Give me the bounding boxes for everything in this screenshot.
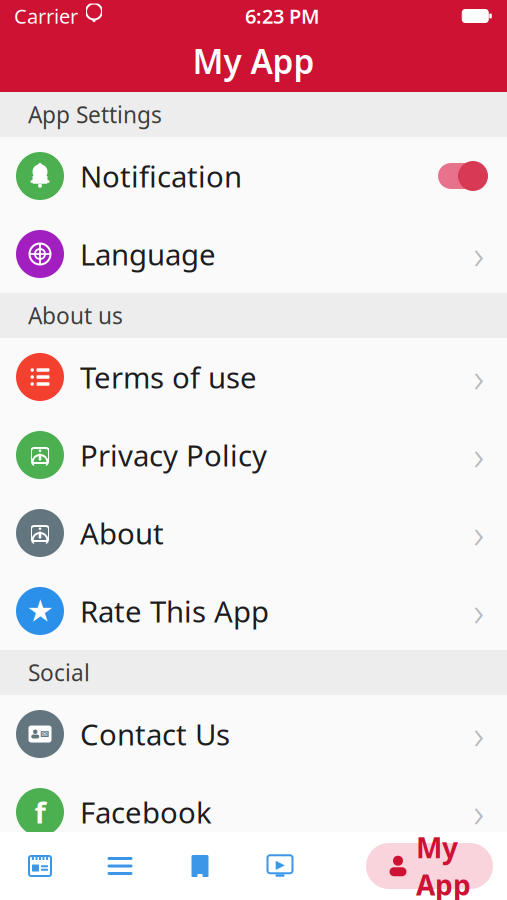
staticText: ▶ [275,857,284,871]
button[interactable]: Notification [0,137,507,215]
staticText: My App [416,829,471,900]
staticText: › [473,506,484,559]
staticText: Language [80,234,216,273]
button[interactable]: ★ [0,572,507,650]
staticText: About [80,513,164,552]
button[interactable]: f [0,773,507,851]
button[interactable]: Menu [80,836,160,896]
staticText: › [473,785,484,838]
staticText: App Settings [28,99,162,129]
staticText: Social [28,657,90,687]
staticText: Privacy Policy [80,435,267,474]
staticText: › [473,707,484,760]
staticText: Facebook [80,792,212,831]
button[interactable]: Terms of use [0,338,507,416]
staticText: › [473,350,484,403]
staticText: Rate This App [80,591,269,630]
staticText: About us [28,300,123,330]
button[interactable]: News [0,836,80,896]
button[interactable]: My App [366,843,493,889]
button[interactable]: Videos [240,836,320,896]
staticText: 6:23 PM [245,3,320,29]
staticText: Contact Us [80,714,230,753]
staticText: f [34,792,45,831]
button[interactable]: About [0,494,507,572]
staticText: › [473,584,484,637]
staticText: › [473,428,484,481]
staticText: Notification [80,156,242,195]
staticText: Terms of use [80,357,257,396]
staticText: ✉ [41,729,48,739]
button[interactable]: Privacy Policy [0,416,507,494]
button[interactable]: ✉ [0,695,507,773]
staticText: My App [192,39,314,83]
button[interactable]: Bookmarks [160,836,240,896]
staticText: ★ [26,594,53,628]
staticText: › [473,227,484,280]
button[interactable]: Language [0,215,507,293]
staticText: Carrier [14,3,78,29]
